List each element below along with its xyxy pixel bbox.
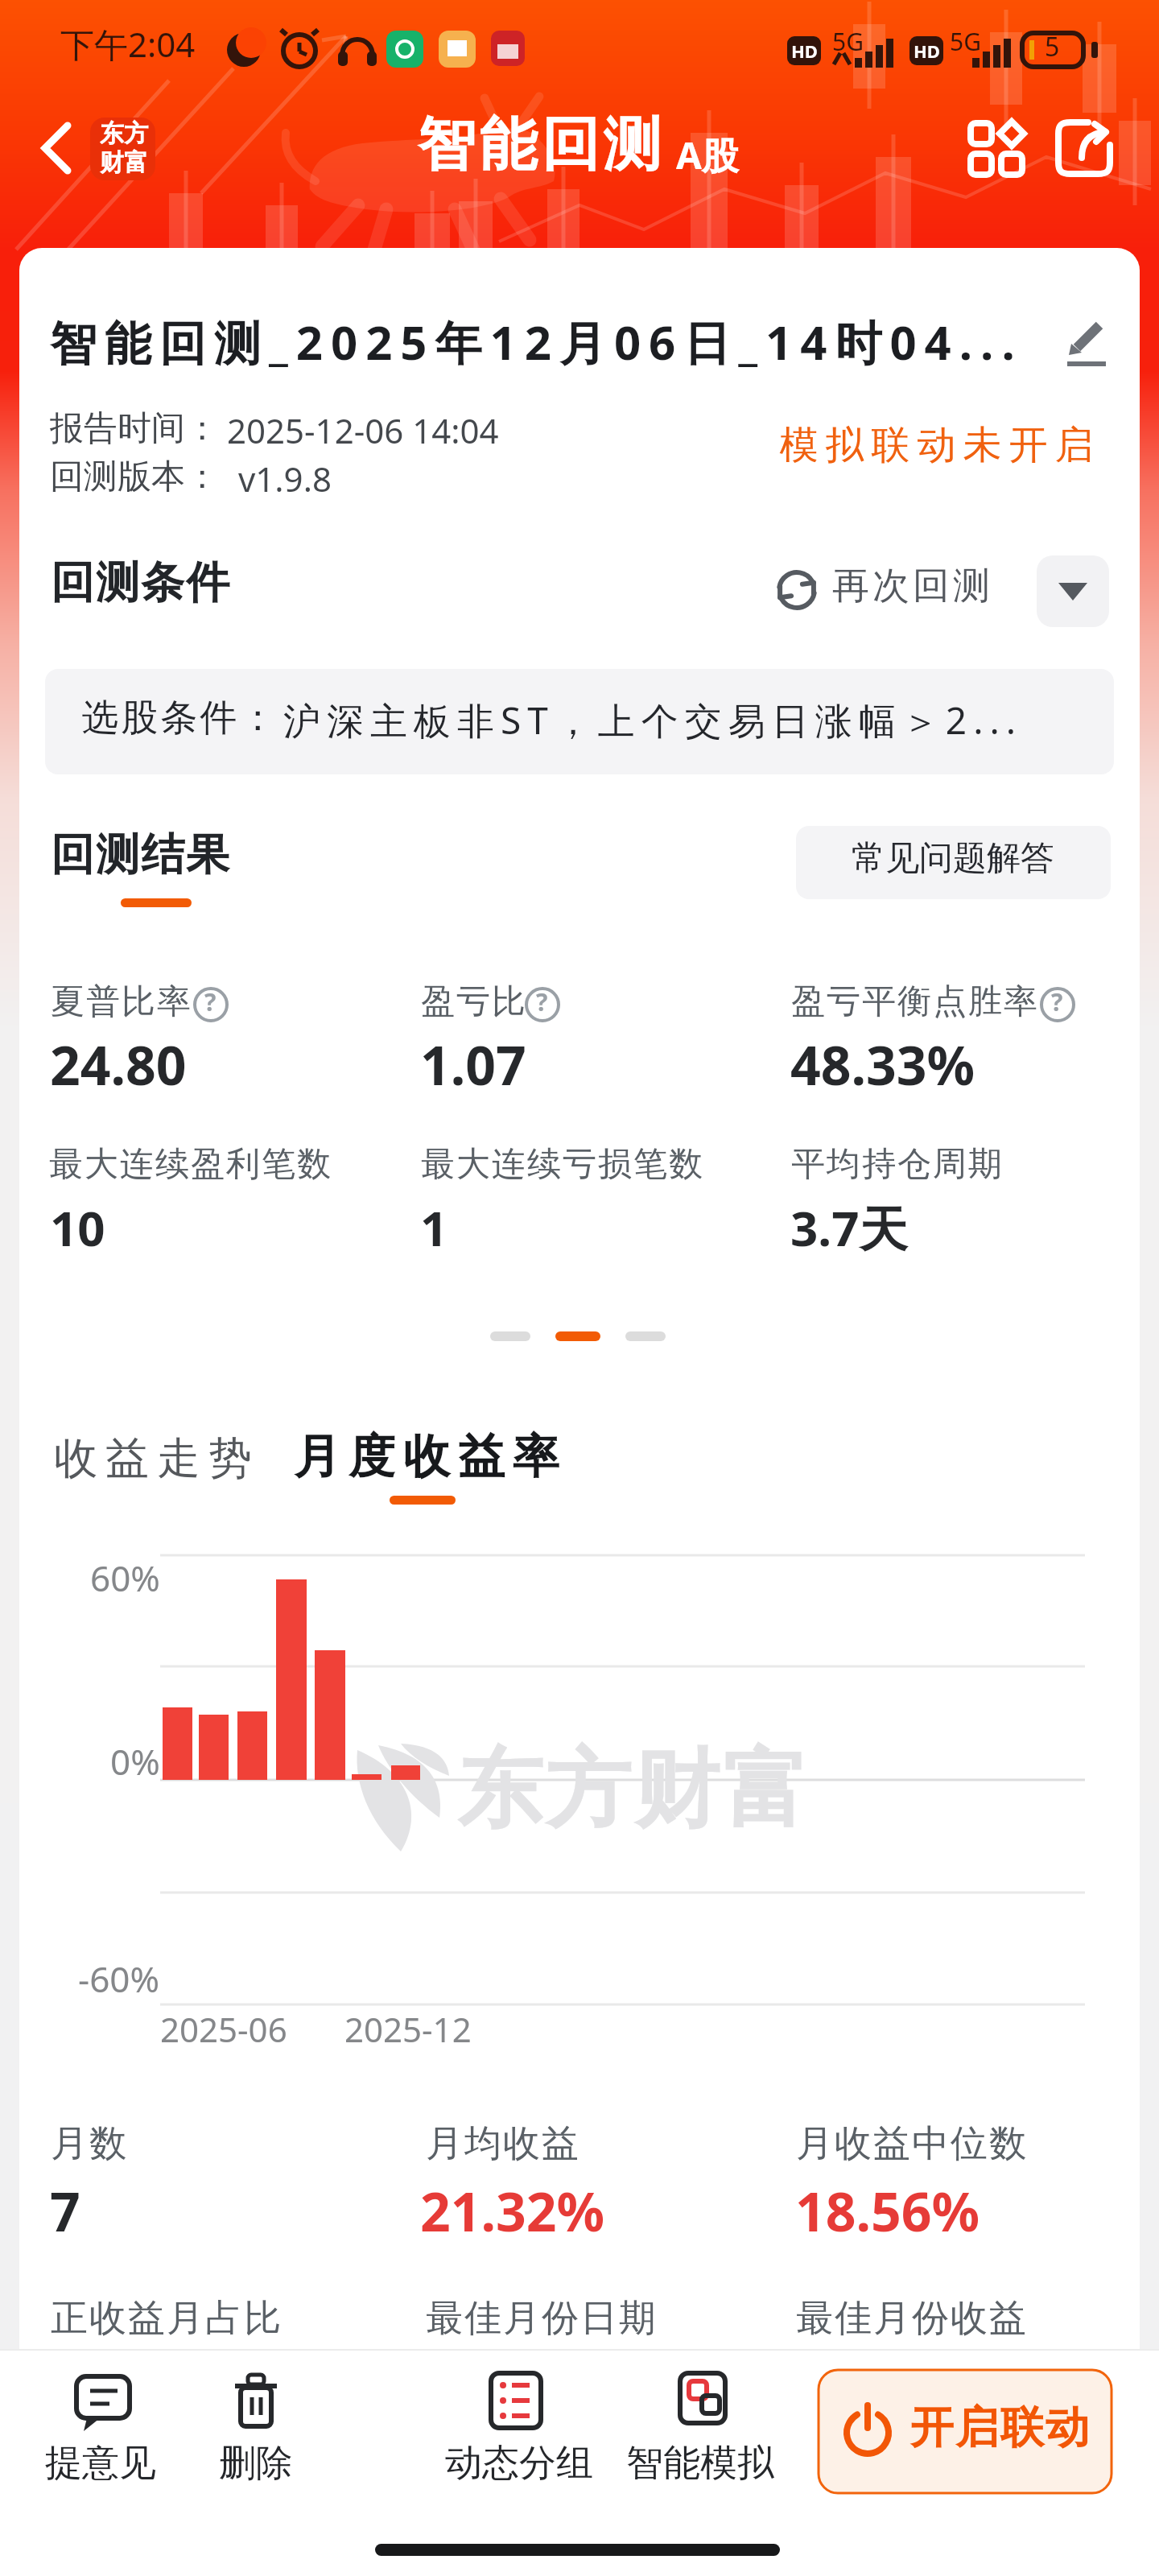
staticText: 平均持仓周期 bbox=[790, 1143, 1003, 1186]
staticText: 2025-12 bbox=[344, 2006, 472, 2052]
staticText: 最佳月份日期 bbox=[425, 2295, 657, 2342]
staticText: 最大连续亏损笔数 bbox=[420, 1143, 703, 1186]
staticText: 回测结果 bbox=[50, 828, 230, 882]
staticText: A股 bbox=[676, 130, 739, 180]
staticText: 5G bbox=[832, 25, 864, 58]
staticText: 月收益中位数 bbox=[795, 2120, 1027, 2167]
staticText: 24.80 bbox=[50, 1028, 187, 1100]
staticText: 沪深主板非ST，上个交易日涨幅＞2... bbox=[283, 695, 1023, 745]
staticText: 月均收益 bbox=[425, 2120, 579, 2167]
button[interactable]: 删除 bbox=[0, 0, 74, 47]
button[interactable]: 收益走势 bbox=[0, 0, 206, 55]
staticText: 正收益月占比 bbox=[50, 2295, 282, 2342]
staticText: ? bbox=[204, 985, 217, 1018]
staticText: 选股条件： bbox=[80, 695, 278, 741]
staticText: ? bbox=[1051, 985, 1063, 1018]
staticText: -60% bbox=[78, 1955, 160, 2003]
button[interactable] bbox=[958, 113, 1035, 187]
staticText: 下午2:04 bbox=[60, 21, 196, 67]
staticText: 3.7天 bbox=[790, 1195, 908, 1261]
button[interactable] bbox=[819, 2370, 1112, 2493]
button[interactable] bbox=[1037, 555, 1109, 627]
staticText: 10 bbox=[50, 1195, 105, 1261]
staticText: 21.32% bbox=[420, 2174, 605, 2247]
staticText: HD bbox=[791, 39, 818, 63]
staticText: 盈亏平衡点胜率 bbox=[790, 980, 1038, 1023]
staticText: 东方 bbox=[100, 118, 148, 149]
button[interactable] bbox=[45, 669, 1114, 774]
staticText: 智能回测_2025年12月06日_14时04... bbox=[50, 310, 1023, 374]
staticText: 最佳月份收益 bbox=[795, 2295, 1027, 2342]
staticText: 财富 bbox=[100, 147, 148, 178]
staticText: 60% bbox=[90, 1554, 160, 1602]
button[interactable]: 月度收益率 bbox=[0, 0, 274, 59]
button[interactable]: 再次回测 bbox=[0, 0, 161, 47]
staticText: 5 bbox=[1045, 29, 1060, 64]
button[interactable] bbox=[1046, 113, 1124, 187]
staticText: 智能回测 bbox=[415, 109, 663, 182]
button[interactable]: 动态分组 bbox=[0, 0, 148, 47]
staticText: 1 bbox=[420, 1195, 448, 1261]
staticText: 月数 bbox=[50, 2120, 127, 2167]
staticText: ? bbox=[536, 985, 548, 1018]
staticText: 开启联动 bbox=[909, 2401, 1090, 2455]
button[interactable]: 提意见 bbox=[0, 0, 111, 47]
staticText: 18.56% bbox=[795, 2174, 980, 2247]
staticText: 最大连续盈利笔数 bbox=[48, 1143, 332, 1186]
staticText: 48.33% bbox=[790, 1028, 975, 1100]
button[interactable]: 模拟联动未开启 bbox=[0, 0, 321, 48]
staticText: 7 bbox=[50, 2174, 80, 2247]
staticText: 2025-12-06 14:04 bbox=[227, 407, 499, 453]
staticText: 常见问题解答 bbox=[852, 837, 1054, 880]
staticText: HD bbox=[914, 39, 940, 63]
staticText: 回测条件 bbox=[50, 555, 230, 610]
staticText: 2025-06 bbox=[160, 2006, 287, 2052]
staticText: 盈亏比 bbox=[420, 980, 526, 1023]
staticText: 1.07 bbox=[420, 1028, 526, 1100]
staticText: 东方财富 bbox=[456, 1736, 810, 1844]
staticText: 0% bbox=[110, 1737, 160, 1785]
staticText: 报告时间： bbox=[50, 407, 219, 450]
button[interactable]: 智能模拟 bbox=[0, 0, 148, 47]
staticText: 夏普比率 bbox=[50, 980, 192, 1023]
staticText: 5G bbox=[950, 25, 981, 58]
button[interactable] bbox=[29, 113, 85, 185]
staticText: v1.9.8 bbox=[238, 456, 332, 502]
button[interactable] bbox=[796, 826, 1111, 899]
staticText: 回测版本： bbox=[50, 456, 219, 498]
